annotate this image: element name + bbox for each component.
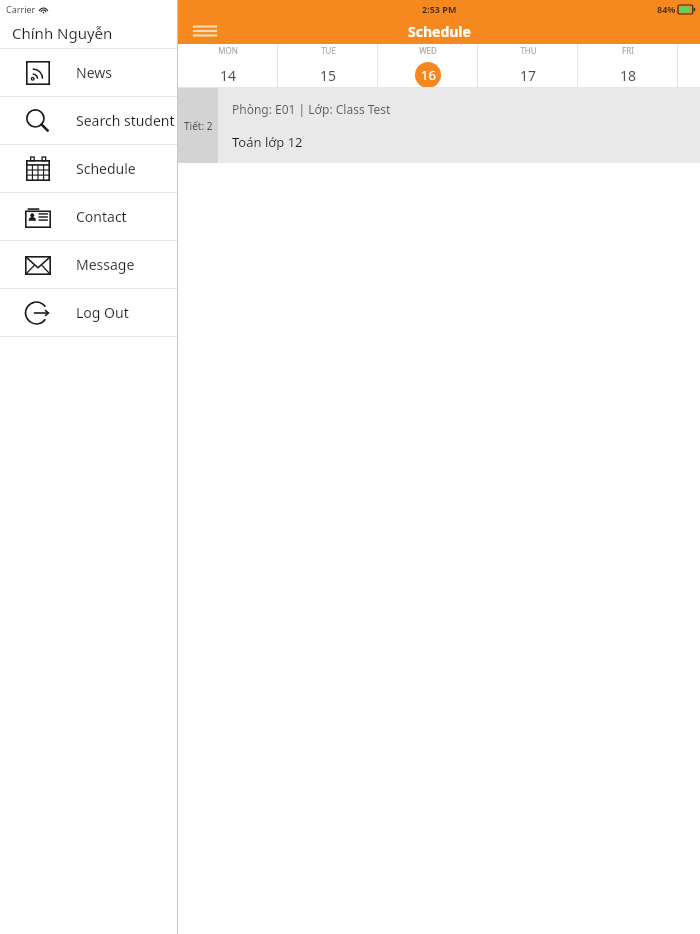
staticText: Chính Nguyễn [12,23,113,43]
staticText: Phòng: E01 | Lớp: Class Test [232,101,391,117]
staticText: 15 [320,66,337,85]
staticText: 16 [421,66,436,84]
staticText: Toán lớp 12 [232,133,303,151]
staticText: MON [218,45,238,56]
button[interactable]: Contact [0,193,177,240]
button[interactable]: Schedule [0,145,177,192]
button[interactable]: Open navigation menu [192,18,218,44]
staticText: WED [419,45,437,56]
staticText: News [76,63,112,82]
button[interactable]: MON [178,44,278,88]
staticText: 18 [620,66,637,85]
button[interactable]: THU [478,44,578,88]
staticText: Tiết: 2 [184,119,213,133]
staticText: FRI [622,45,634,56]
staticText: THU [520,45,537,56]
button[interactable]: FRI [578,44,678,88]
staticText: 2:53 PM [422,3,457,15]
button[interactable]: Log Out [0,289,177,336]
staticText: Contact [76,207,127,226]
button[interactable]: Search student [0,97,177,144]
staticText: Log Out [76,303,129,322]
button[interactable]: TUE [278,44,378,88]
button[interactable]: Message [0,241,177,288]
staticText: 17 [520,66,537,85]
staticText: Carrier [6,3,36,15]
staticText: Search student [76,111,175,130]
button[interactable]: Tiết: 2 [178,88,700,163]
staticText: Schedule [76,159,136,178]
staticText: Schedule [408,22,471,41]
button[interactable]: WED [378,44,478,88]
staticText: 14 [220,66,237,85]
staticText: 84% [657,3,676,15]
staticText: Message [76,255,135,274]
button[interactable]: News [0,49,177,96]
button[interactable]: Chính Nguyễn [0,18,177,48]
staticText: TUE [321,45,336,56]
